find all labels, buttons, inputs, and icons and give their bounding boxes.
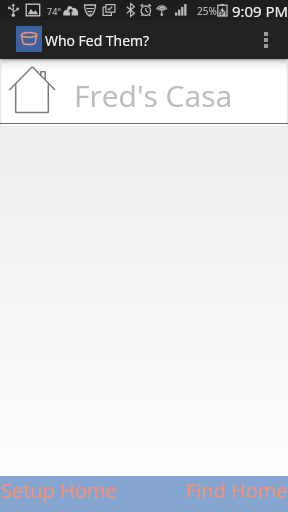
- staticText: Find Home: [186, 477, 288, 504]
- staticText: 25%: [197, 4, 217, 18]
- button[interactable]: Find Home: [186, 476, 288, 512]
- button[interactable]: More options: [249, 20, 282, 59]
- staticText: Who Fed Them?: [45, 31, 150, 50]
- staticText: 74°: [47, 5, 62, 17]
- button[interactable]: Setup Home: [0, 476, 118, 512]
- staticText: Fred's Casa: [74, 75, 233, 116]
- button[interactable]: Fred's Casa: [0, 59, 288, 126]
- staticText: 9:09 PM: [232, 1, 288, 21]
- staticText: Setup Home: [1, 477, 117, 504]
- other: App icon: [16, 26, 42, 52]
